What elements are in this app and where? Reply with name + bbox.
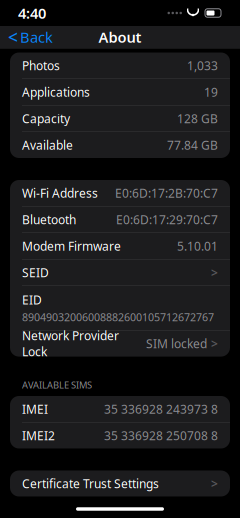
staticText: 19 <box>204 84 218 100</box>
staticText: SEID <box>22 264 49 280</box>
staticText: > <box>211 264 218 280</box>
staticText: 89049032006008882600105712672767 <box>22 310 214 324</box>
button[interactable]: Modem Firmware <box>10 233 230 259</box>
button[interactable]: Wi-Fi Address <box>10 180 230 206</box>
staticText: Available <box>22 137 73 153</box>
staticText: Modem Firmware <box>22 238 121 254</box>
staticText: 77.84 GB <box>167 137 218 153</box>
staticText: Certificate Trust Settings <box>22 475 159 491</box>
staticText: E0:6D:17:2B:70:C7 <box>115 185 218 201</box>
button[interactable]: IMEI2 <box>10 422 230 448</box>
staticText: 35 336928 243973 8 <box>104 401 218 417</box>
staticText: > <box>211 475 218 491</box>
button[interactable]: SEID <box>10 259 230 285</box>
staticText: IMEI <box>22 401 48 417</box>
staticText: 5.10.01 <box>177 238 218 254</box>
staticText: < <box>8 25 18 48</box>
staticText: SIM locked <box>146 336 207 351</box>
button[interactable]: < <box>0 26 61 48</box>
staticText: Applications <box>22 84 90 100</box>
button[interactable]: Available <box>10 132 230 158</box>
button[interactable]: Certificate Trust Settings <box>10 470 230 496</box>
staticText: AVAILABLE SIMS <box>22 379 92 391</box>
staticText: Wi-Fi Address <box>22 185 98 201</box>
button[interactable]: Photos <box>10 52 230 78</box>
staticText: 35 336928 250708 8 <box>104 427 218 443</box>
button[interactable]: IMEI <box>10 396 230 422</box>
staticText: Network Provider Lock <box>22 328 119 360</box>
button[interactable]: EID <box>10 286 230 330</box>
staticText: 4:40 <box>18 3 46 23</box>
staticText: Bluetooth <box>22 211 76 227</box>
button[interactable]: Capacity <box>10 105 230 131</box>
button[interactable]: Bluetooth <box>10 206 230 232</box>
staticText: Photos <box>22 57 60 73</box>
staticText: IMEI2 <box>22 427 55 443</box>
button[interactable]: Applications <box>10 79 230 105</box>
staticText: Back <box>20 27 53 47</box>
staticText: About <box>98 27 141 47</box>
button[interactable]: Network Provider Lock <box>10 331 230 357</box>
staticText: 128 GB <box>177 110 218 126</box>
staticText: > <box>211 336 218 351</box>
staticText: Capacity <box>22 110 70 126</box>
staticText: EID <box>22 292 42 308</box>
staticText: E0:6D:17:29:70:C7 <box>116 211 218 227</box>
staticText: 1,033 <box>187 57 218 73</box>
